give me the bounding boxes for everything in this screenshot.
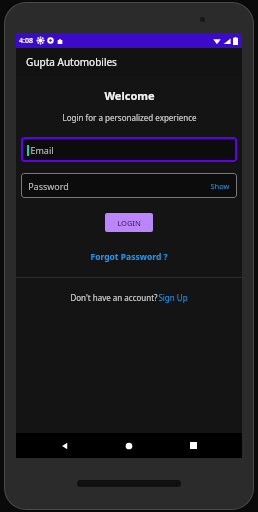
staticText: Login for a personalized experience xyxy=(62,112,197,123)
button[interactable]: Home xyxy=(114,433,144,458)
staticText: LOGIN xyxy=(117,218,141,228)
button[interactable]: Recent apps xyxy=(178,433,208,458)
staticText: Password xyxy=(28,180,69,192)
button[interactable]: Password xyxy=(21,173,237,198)
staticText: Email xyxy=(30,144,54,156)
button[interactable]: Back xyxy=(50,433,80,458)
staticText: Welcome xyxy=(104,88,155,103)
staticText: 4:08 xyxy=(19,36,33,46)
button[interactable]: Forgot Password ? xyxy=(86,247,172,267)
button[interactable]: Email xyxy=(21,137,237,162)
button[interactable]: LOGIN xyxy=(105,213,153,232)
button[interactable]: Show xyxy=(210,181,230,191)
staticText: Show xyxy=(210,181,230,191)
staticText: Gupta Automobiles xyxy=(26,55,117,69)
staticText: Don't have an account? xyxy=(70,292,158,303)
button[interactable]: Sign Up xyxy=(158,292,188,303)
staticText: Sign Up xyxy=(158,292,188,303)
staticText: Forgot Password ? xyxy=(90,251,168,263)
